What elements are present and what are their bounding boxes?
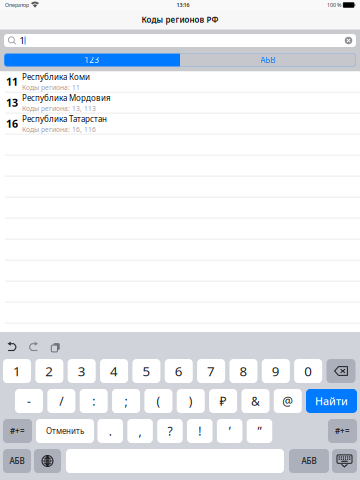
staticText: 13 bbox=[6, 95, 18, 110]
staticText: Коды регионов РФ bbox=[141, 14, 218, 25]
button[interactable]: 3 bbox=[68, 359, 96, 383]
staticText: #+= bbox=[335, 426, 350, 436]
staticText: @ bbox=[282, 393, 293, 409]
staticText: ! bbox=[198, 423, 201, 439]
staticText: #+= bbox=[10, 426, 25, 436]
staticText: 123 bbox=[84, 55, 99, 65]
staticText: - bbox=[27, 393, 31, 409]
staticText: 0 bbox=[304, 362, 312, 380]
staticText: & bbox=[251, 393, 260, 409]
button[interactable]: 6 bbox=[165, 359, 193, 383]
staticText: 3 bbox=[78, 362, 86, 380]
button[interactable]: 0 bbox=[294, 359, 322, 383]
staticText: 13:16 bbox=[177, 1, 190, 9]
staticText: Коды региона: 16, 116 bbox=[22, 125, 96, 134]
button[interactable]: Undo bbox=[7, 341, 17, 351]
button[interactable]: - bbox=[15, 389, 43, 413]
button[interactable]: & bbox=[241, 389, 269, 413]
staticText: Республика Коми bbox=[22, 71, 90, 82]
staticText: ? bbox=[167, 423, 172, 439]
button[interactable]: Hide keyboard bbox=[332, 449, 357, 473]
staticText: Отменить bbox=[46, 426, 84, 436]
button[interactable]: 1 bbox=[4, 34, 356, 47]
staticText: АБВ bbox=[260, 55, 275, 65]
staticText: 8 bbox=[239, 362, 247, 380]
staticText: . bbox=[109, 423, 112, 439]
staticText: ” bbox=[257, 423, 261, 439]
button[interactable]: ? bbox=[157, 419, 183, 443]
button[interactable]: Найти bbox=[306, 389, 357, 413]
button[interactable]: 5 bbox=[132, 359, 160, 383]
staticText: 2 bbox=[45, 362, 53, 380]
staticText: : bbox=[92, 393, 95, 409]
staticText: 16 bbox=[6, 116, 18, 131]
button[interactable]: 1 bbox=[3, 359, 31, 383]
staticText: Найти bbox=[315, 394, 348, 408]
button[interactable]: 13 bbox=[0, 92, 360, 113]
button[interactable]: ( bbox=[144, 389, 172, 413]
staticText: ₽ bbox=[220, 393, 227, 409]
staticText: АБВ bbox=[9, 456, 24, 466]
staticText: Республика Татарстан bbox=[22, 113, 107, 124]
button[interactable]: 16 bbox=[0, 113, 360, 134]
button[interactable]: АБВ bbox=[3, 449, 31, 473]
staticText: 11 bbox=[6, 74, 18, 89]
staticText: ’ bbox=[229, 423, 231, 439]
button[interactable]: ! bbox=[187, 419, 213, 443]
button[interactable]: 7 bbox=[197, 359, 225, 383]
staticText: АБВ bbox=[301, 456, 316, 466]
button[interactable]: 11 bbox=[0, 71, 360, 92]
button[interactable]: Next keyboard bbox=[34, 449, 61, 473]
button[interactable]: Отменить bbox=[36, 419, 94, 443]
button[interactable]: . bbox=[97, 419, 123, 443]
button[interactable]: АБВ bbox=[289, 449, 329, 473]
button[interactable]: ; bbox=[112, 389, 140, 413]
staticText: Республика Мордовия bbox=[22, 92, 111, 103]
button[interactable]: 2 bbox=[35, 359, 63, 383]
button[interactable]: 9 bbox=[262, 359, 290, 383]
button[interactable]: ) bbox=[177, 389, 205, 413]
staticText: 1 bbox=[20, 34, 25, 47]
button[interactable]: @ bbox=[274, 389, 302, 413]
staticText: 6 bbox=[175, 362, 183, 380]
staticText: Оператор bbox=[5, 1, 29, 9]
button[interactable]: ” bbox=[247, 419, 272, 443]
button[interactable]: #+= bbox=[3, 419, 32, 443]
staticText: 7 bbox=[207, 362, 215, 380]
button[interactable]: #+= bbox=[328, 419, 357, 443]
staticText: ) bbox=[189, 393, 193, 409]
staticText: ( bbox=[156, 393, 160, 409]
button[interactable]: / bbox=[47, 389, 75, 413]
button[interactable]: 4 bbox=[100, 359, 128, 383]
staticText: Коды региона: 11 bbox=[22, 83, 80, 92]
staticText: 9 bbox=[272, 362, 280, 380]
staticText: 1 bbox=[13, 362, 21, 380]
staticText: 5 bbox=[142, 362, 150, 380]
staticText: Коды региона: 13, 113 bbox=[22, 104, 96, 113]
button[interactable]: Redo bbox=[28, 341, 38, 351]
button[interactable]: АБВ bbox=[180, 53, 356, 66]
button[interactable]: Delete bbox=[326, 359, 355, 383]
staticText: , bbox=[139, 423, 142, 439]
button[interactable]: : bbox=[80, 389, 108, 413]
button[interactable]: Paste bbox=[49, 341, 59, 351]
button[interactable]: 123 bbox=[4, 53, 180, 66]
button[interactable]: , bbox=[127, 419, 153, 443]
staticText: / bbox=[59, 393, 63, 409]
button[interactable]: ’ bbox=[217, 419, 242, 443]
staticText: 4 bbox=[110, 362, 118, 380]
button[interactable]: 8 bbox=[229, 359, 257, 383]
staticText: ; bbox=[125, 393, 128, 409]
staticText: 100 % bbox=[327, 1, 341, 9]
button[interactable]: ₽ bbox=[209, 389, 237, 413]
